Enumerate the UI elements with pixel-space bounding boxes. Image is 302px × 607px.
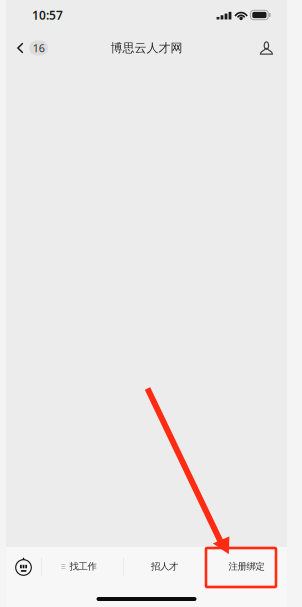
staticText: 博思云人才网 [110,41,182,55]
staticText: 招人才 [151,561,178,572]
staticText: 16 [33,41,45,55]
staticText: 10:57 [32,7,63,23]
button[interactable]: Mini Program menu [6,547,41,586]
staticText: 找工作 [69,561,96,572]
button[interactable]: 找工作 [42,547,123,586]
button[interactable]: Profile [257,35,276,61]
button[interactable]: 注册绑定 [206,547,287,586]
button[interactable]: 招人才 [124,547,205,586]
staticText: 注册绑定 [228,561,264,572]
button[interactable]: Back, 16 [17,34,48,61]
